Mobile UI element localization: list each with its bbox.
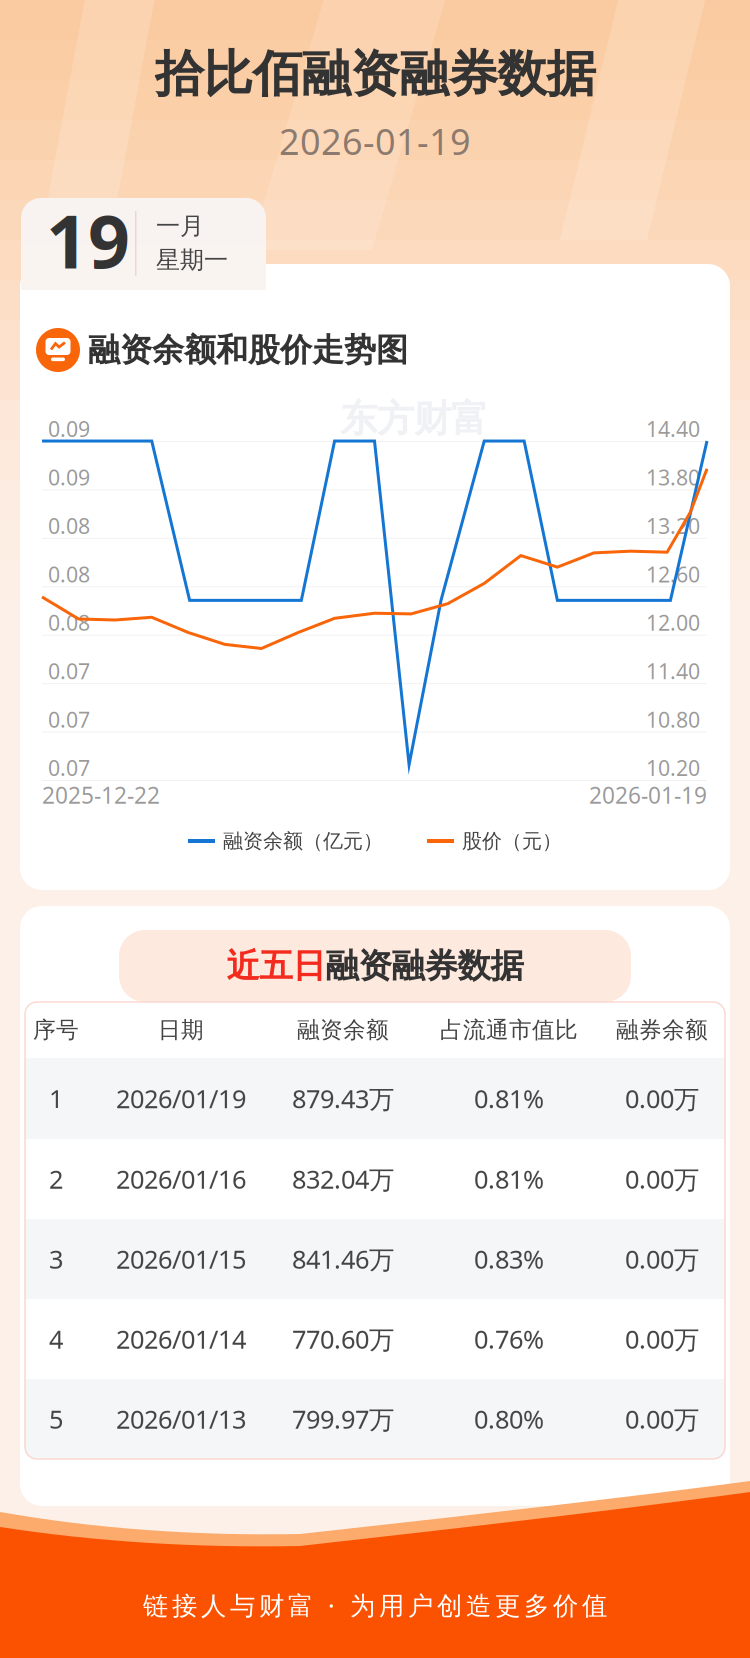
- staticText: 3: [49, 1242, 63, 1276]
- staticText: 0.07: [48, 754, 90, 782]
- staticText: 10.80: [646, 705, 700, 733]
- staticText: 0.09: [48, 415, 90, 443]
- staticText: 770.60万: [292, 1322, 394, 1356]
- staticText: 0.83%: [474, 1242, 544, 1276]
- staticText: 0.08: [48, 511, 90, 540]
- staticText: 2025-12-22: [42, 780, 160, 810]
- staticText: 融券余额: [616, 1016, 708, 1044]
- staticText: 0.08: [48, 608, 90, 637]
- staticText: 13.80: [646, 463, 700, 491]
- staticText: 2: [49, 1162, 63, 1196]
- staticText: 2026/01/15: [116, 1242, 246, 1276]
- staticText: 2026-01-19: [279, 117, 471, 165]
- staticText: 拾比佰融资融券数据: [154, 44, 595, 104]
- staticText: 0.09: [48, 463, 90, 491]
- staticText: 融资融券数据: [325, 945, 523, 986]
- staticText: 13.20: [646, 511, 700, 540]
- staticText: 841.46万: [292, 1242, 394, 1276]
- staticText: 4: [49, 1322, 63, 1356]
- staticText: 2026-01-19: [589, 780, 707, 810]
- staticText: 0.00万: [625, 1082, 699, 1115]
- staticText: 19: [46, 191, 130, 289]
- staticText: 序号: [33, 1016, 79, 1044]
- staticText: 2026/01/14: [116, 1322, 246, 1356]
- staticText: 0.00万: [625, 1322, 699, 1356]
- staticText: 0.00万: [625, 1162, 699, 1196]
- staticText: 0.00万: [625, 1242, 699, 1276]
- staticText: 股价（元）: [462, 829, 562, 853]
- staticText: 星期一: [156, 245, 228, 275]
- staticText: 11.40: [646, 657, 700, 685]
- staticText: 0.81%: [474, 1162, 544, 1196]
- staticText: 近五日: [226, 945, 325, 986]
- staticText: 0.81%: [474, 1082, 544, 1115]
- staticText: 832.04万: [292, 1162, 394, 1196]
- staticText: 0.76%: [474, 1322, 544, 1356]
- staticText: 2026/01/16: [116, 1162, 246, 1196]
- staticText: 0.07: [48, 705, 90, 733]
- staticText: 0.80%: [474, 1402, 544, 1436]
- staticText: 链接人与财富 · 为用户创造更多价值: [143, 1588, 607, 1622]
- staticText: 2026/01/13: [116, 1402, 246, 1436]
- staticText: 799.97万: [292, 1402, 394, 1436]
- staticText: 一月: [156, 211, 204, 241]
- staticText: 879.43万: [292, 1082, 394, 1115]
- staticText: 0.00万: [625, 1402, 699, 1436]
- staticText: 融资余额（亿元）: [223, 829, 383, 853]
- staticText: 12.60: [646, 560, 700, 588]
- staticText: 融资余额和股价走势图: [88, 330, 408, 370]
- staticText: 0.07: [48, 657, 90, 685]
- staticText: 占流通市值比: [440, 1016, 578, 1044]
- staticText: 12.00: [646, 608, 700, 637]
- staticText: 2026/01/19: [116, 1082, 246, 1115]
- staticText: 14.40: [646, 415, 700, 443]
- staticText: 融资余额: [297, 1016, 389, 1044]
- staticText: 10.20: [646, 754, 700, 782]
- staticText: 5: [49, 1402, 63, 1436]
- staticText: 东方财富: [340, 396, 488, 442]
- staticText: 0.08: [48, 560, 90, 588]
- staticText: 1: [49, 1082, 63, 1115]
- staticText: 日期: [158, 1016, 204, 1044]
